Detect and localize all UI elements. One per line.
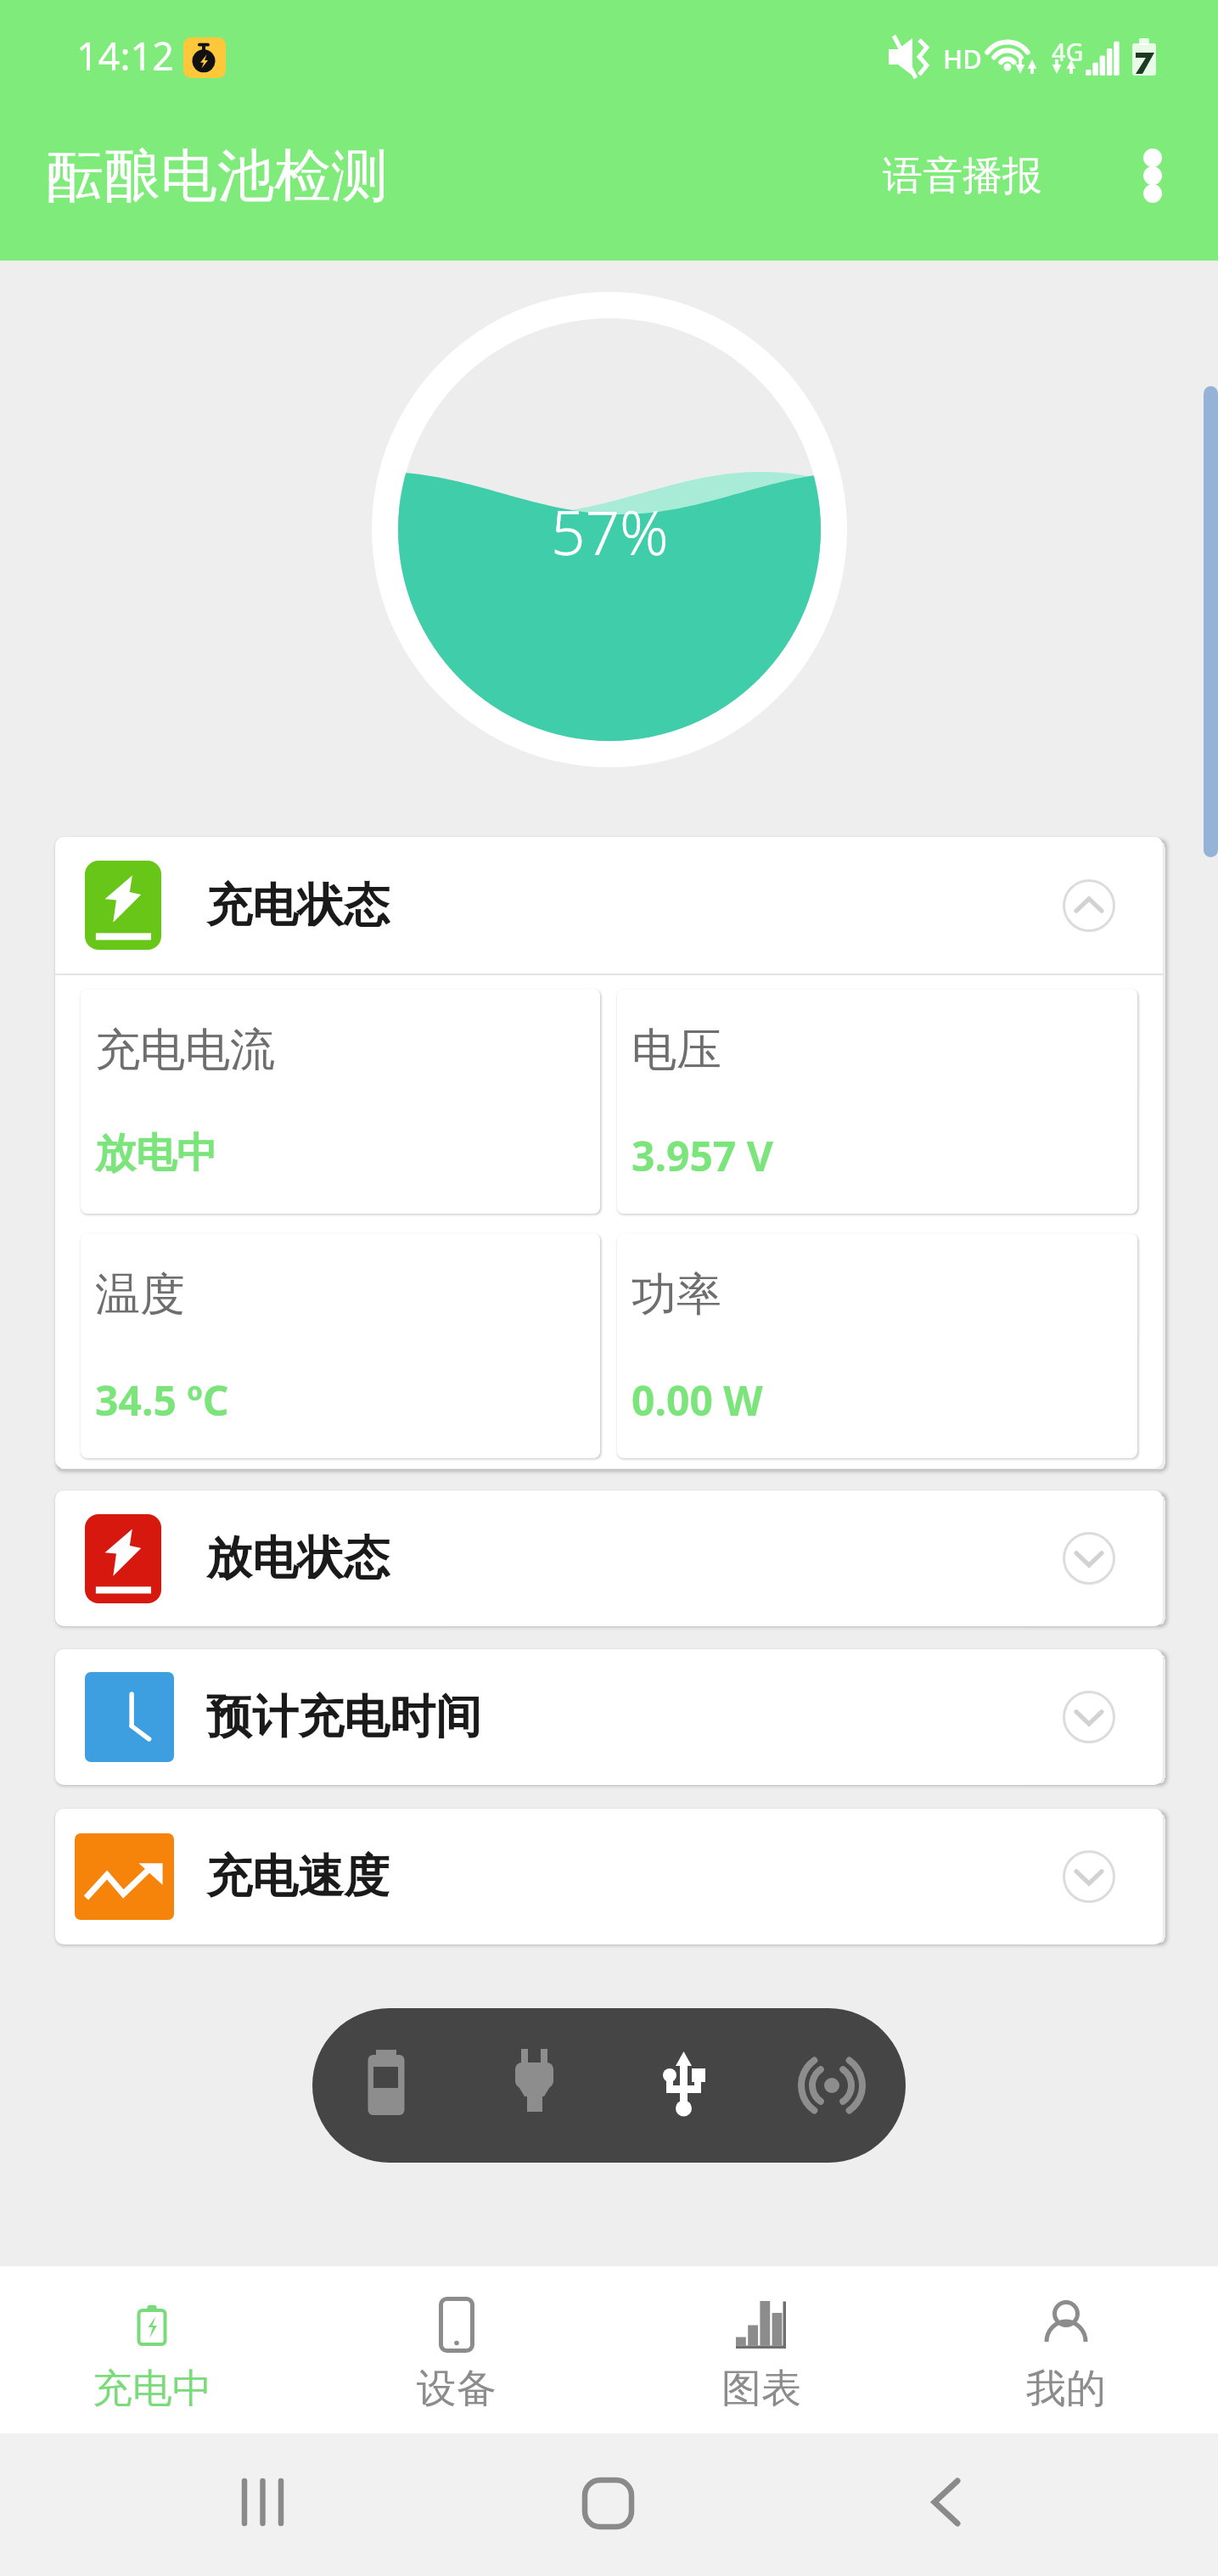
staticText: 充电状态 [206,877,390,934]
button[interactable]: Back [877,2461,1013,2540]
staticText: 我的 [1026,2364,1106,2414]
staticText: 4G [1052,35,1084,68]
button[interactable]: 充电状态 [55,837,1163,974]
staticText: 充电中 [93,2364,212,2414]
button[interactable]: Expand [1061,1689,1117,1745]
staticText: 温度 [95,1266,185,1323]
button[interactable]: 充电电流 [81,989,600,1214]
button[interactable]: 预计充电时间 [55,1649,1163,1785]
button[interactable]: 放电状态 [55,1490,1163,1626]
staticText: 0.00 W [631,1372,763,1428]
staticText: 充电速度 [206,1848,390,1905]
button[interactable]: 充电中 [0,2266,304,2433]
button[interactable]: More options [1102,125,1204,227]
button[interactable]: 温度 [81,1233,600,1458]
button[interactable]: Expand [1061,1530,1117,1586]
staticText: 放电中 [95,1128,217,1179]
button[interactable]: 图表 [609,2266,913,2433]
button[interactable]: Battery source [312,2008,460,2163]
button[interactable]: Recent apps [195,2461,331,2540]
button[interactable]: Home [539,2461,675,2540]
staticText: 3.957 V [631,1128,773,1183]
staticText: 酝酿电池检测 [47,140,388,211]
staticText: HD [943,41,982,76]
button[interactable]: 功率 [617,1233,1137,1458]
staticText: 图表 [721,2364,801,2414]
staticText: 设备 [417,2364,497,2414]
staticText: 充电电流 [95,1022,275,1079]
staticText: 电压 [631,1022,721,1079]
button[interactable]: USB source [609,2008,757,2163]
button[interactable]: 语音播报 [874,134,1051,218]
button[interactable]: 我的 [913,2266,1218,2433]
staticText: 语音播报 [883,151,1042,201]
button[interactable]: Wireless source [757,2008,906,2163]
staticText: 放电状态 [206,1529,390,1587]
staticText: 57% [551,491,669,573]
button[interactable]: 设备 [304,2266,609,2433]
button[interactable]: Collapse [1061,878,1117,934]
button[interactable]: 充电速度 [55,1809,1163,1945]
button[interactable]: Expand [1061,1849,1117,1905]
staticText: 功率 [631,1266,721,1323]
button[interactable]: 电压 [617,989,1137,1214]
button[interactable]: AC source [460,2008,609,2163]
staticText: 预计充电时间 [206,1688,481,1746]
staticText: 14:12 [76,30,175,81]
staticText: 34.5 ºC [95,1372,229,1428]
